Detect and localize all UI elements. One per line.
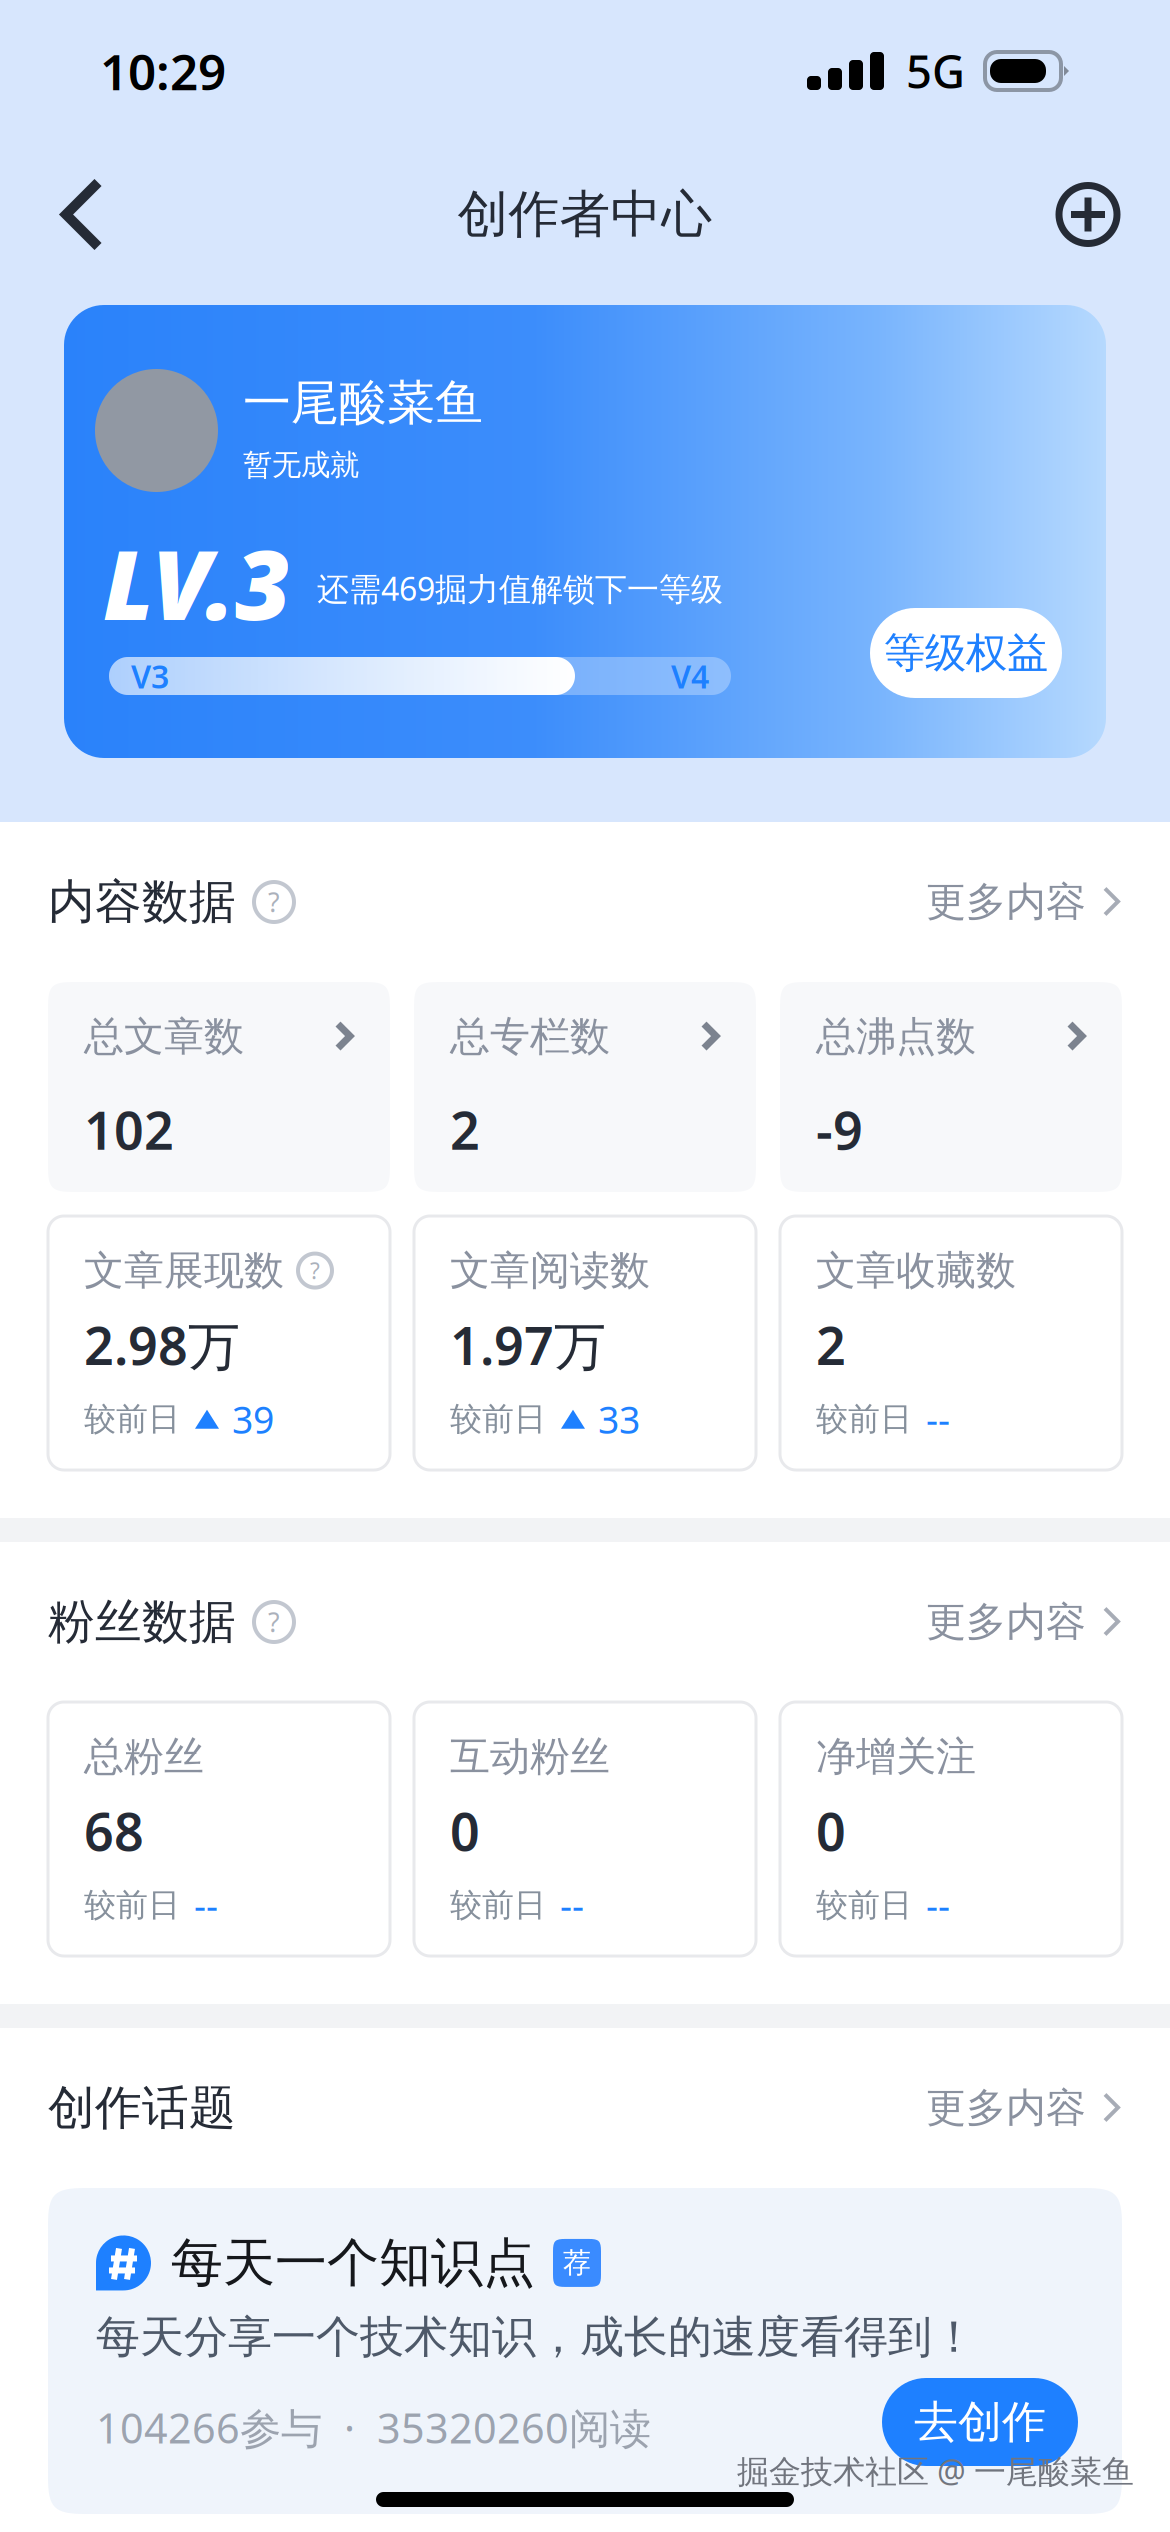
staticText: 净增关注: [816, 1732, 976, 1781]
button[interactable]: 总粉丝: [48, 1702, 390, 1956]
staticText: 较前日: [84, 1400, 180, 1439]
staticText: 每天分享一个技术知识，成长的速度看得到！: [96, 2310, 976, 2364]
staticText: 文章收藏数: [816, 1246, 1016, 1295]
button[interactable]: 净增关注: [780, 1702, 1122, 1956]
staticText: V3: [131, 655, 169, 697]
staticText: 等级权益: [884, 628, 1048, 678]
button[interactable]: Create: [1026, 144, 1150, 284]
staticText: 总专栏数: [450, 1012, 610, 1061]
staticText: -9: [816, 1095, 863, 1164]
staticText: 2: [816, 1310, 846, 1379]
staticText: --: [926, 1880, 950, 1930]
staticText: 102: [84, 1095, 174, 1164]
staticText: 每天一个知识点: [171, 2231, 535, 2295]
staticText: 掘金技术社区 @ 一尾酸菜鱼: [737, 2449, 1134, 2492]
staticText: 10:29: [100, 38, 226, 104]
button[interactable]: 文章阅读数: [414, 1216, 756, 1470]
button[interactable]: 等级权益: [870, 608, 1062, 698]
staticText: 总文章数: [84, 1012, 244, 1061]
staticText: 1.97万: [450, 1310, 606, 1379]
button[interactable]: 更多内容: [926, 1597, 1122, 1646]
staticText: 文章展现数: [84, 1246, 284, 1295]
staticText: 较前日: [816, 1886, 912, 1925]
staticText: 更多内容: [926, 877, 1086, 926]
button[interactable]: 更多内容: [926, 877, 1122, 926]
button[interactable]: 总专栏数: [414, 982, 756, 1192]
staticText: 较前日: [84, 1886, 180, 1925]
staticText: ?: [310, 1255, 320, 1286]
staticText: 总粉丝: [84, 1732, 204, 1781]
staticText: ?: [268, 884, 280, 920]
button[interactable]: 总文章数: [48, 982, 390, 1192]
staticText: 0: [450, 1796, 480, 1865]
button[interactable]: Back: [20, 144, 144, 284]
staticText: 互动粉丝: [450, 1732, 610, 1781]
button[interactable]: 文章收藏数: [780, 1216, 1122, 1470]
staticText: 总沸点数: [816, 1012, 976, 1061]
staticText: 粉丝数据: [48, 1593, 236, 1651]
staticText: 68: [84, 1796, 144, 1865]
staticText: 104266参与 · 35320260阅读: [96, 2400, 651, 2455]
staticText: 39: [232, 1394, 274, 1444]
button[interactable]: 文章展现数: [48, 1216, 390, 1470]
staticText: 0: [816, 1796, 846, 1865]
staticText: V4: [671, 655, 709, 697]
staticText: ?: [268, 1604, 280, 1640]
staticText: --: [926, 1394, 950, 1444]
staticText: 一尾酸菜鱼: [243, 373, 483, 432]
staticText: 2.98万: [84, 1310, 240, 1379]
staticText: 较前日: [450, 1400, 546, 1439]
staticText: 去创作: [914, 2395, 1046, 2449]
button[interactable]: [48, 2188, 1122, 2514]
staticText: 更多内容: [926, 1597, 1086, 1646]
staticText: --: [194, 1880, 218, 1930]
staticText: --: [560, 1880, 584, 1930]
button[interactable]: 总沸点数: [780, 982, 1122, 1192]
staticText: 暂无成就: [243, 447, 359, 483]
staticText: 内容数据: [48, 873, 236, 931]
staticText: 33: [598, 1394, 640, 1444]
staticText: 更多内容: [926, 2083, 1086, 2132]
staticText: 文章阅读数: [450, 1246, 650, 1295]
staticText: 创作话题: [48, 2079, 236, 2137]
button[interactable]: 更多内容: [926, 2083, 1122, 2132]
staticText: 较前日: [450, 1886, 546, 1925]
button[interactable]: 互动粉丝: [414, 1702, 756, 1956]
staticText: 2: [450, 1095, 480, 1164]
staticText: LV.3: [103, 519, 291, 646]
staticText: 创作者中心: [457, 183, 712, 246]
staticText: 还需469掘力值解锁下一等级: [317, 567, 723, 609]
staticText: 5G: [906, 41, 965, 101]
staticText: 较前日: [816, 1400, 912, 1439]
staticText: 荐: [563, 2246, 591, 2280]
